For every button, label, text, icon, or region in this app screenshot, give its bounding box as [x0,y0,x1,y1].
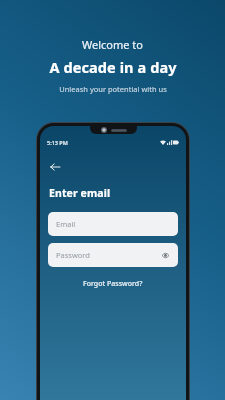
button[interactable]: Email [48,212,178,236]
button[interactable]: Back [47,159,63,175]
staticText: Password [56,250,90,260]
button[interactable]: Password [48,243,178,267]
button[interactable]: Forgot Password? [77,277,149,291]
staticText: Forgot Password? [83,279,143,289]
staticText: 5:13 PM [47,139,68,146]
staticText: Welcome to [82,37,143,52]
staticText: Enter email [49,186,111,200]
button[interactable]: Show password [160,250,170,260]
staticText: Email [56,219,76,229]
staticText: Unleash your potential with us [59,84,167,94]
staticText: A decade in a day [49,57,177,77]
